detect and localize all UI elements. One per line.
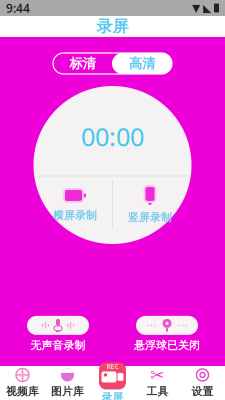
staticText: 设置 bbox=[191, 385, 213, 398]
staticText: ▼ bbox=[192, 2, 200, 14]
staticText: 工具 bbox=[146, 385, 168, 398]
button[interactable]: 设置 bbox=[180, 366, 225, 400]
button[interactable]: REC bbox=[90, 366, 135, 400]
staticText: 录屏 bbox=[101, 390, 123, 400]
staticText: 无声音录制 bbox=[30, 339, 85, 352]
button[interactable]: 横屏录制 bbox=[38, 176, 112, 232]
staticText: 悬浮球已关闭 bbox=[134, 339, 200, 352]
staticText: 高清 bbox=[129, 55, 155, 72]
staticText: 标清 bbox=[69, 55, 95, 72]
button[interactable]: 悬浮球已关闭 bbox=[119, 316, 215, 352]
staticText: ✂ bbox=[150, 365, 165, 385]
button[interactable]: 标清 bbox=[53, 53, 112, 74]
button[interactable]: 高清 bbox=[112, 53, 172, 74]
button[interactable]: 无声音录制 bbox=[10, 316, 106, 352]
staticText: 00:00 bbox=[81, 120, 144, 153]
staticText: ◣ bbox=[203, 2, 211, 14]
staticText: 横屏录制 bbox=[53, 209, 97, 222]
staticText: 录屏 bbox=[96, 17, 128, 36]
staticText: 视频库 bbox=[6, 385, 39, 398]
button[interactable]: 视频库 bbox=[0, 366, 45, 400]
button[interactable]: ✂ bbox=[135, 366, 180, 400]
staticText: 图片库 bbox=[51, 385, 84, 398]
button[interactable]: 图片库 bbox=[45, 366, 90, 400]
staticText: 9:44 bbox=[6, 0, 30, 16]
button[interactable]: 竖屏录制 bbox=[113, 176, 187, 232]
staticText: REC bbox=[106, 362, 118, 371]
staticText: 竖屏录制 bbox=[128, 211, 172, 224]
